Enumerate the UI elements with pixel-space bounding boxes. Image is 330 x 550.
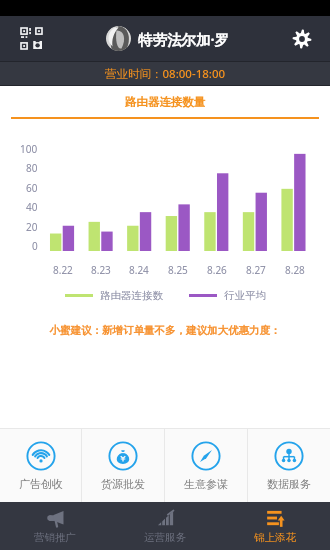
button[interactable]: 数据服务 — [248, 429, 330, 502]
staticText: 8.28 — [285, 263, 305, 277]
button[interactable]: 扫一扫 — [0, 16, 62, 61]
staticText: 20 — [26, 220, 38, 234]
staticText: 100 — [20, 142, 38, 156]
button[interactable]: 生意参谋 — [165, 429, 247, 502]
staticText: 8.24 — [129, 263, 149, 277]
staticText: 0 — [32, 239, 38, 253]
button[interactable]: 设置 — [274, 16, 330, 61]
staticText: 小蜜建议：新增订单量不多，建议加大优惠力度： — [0, 324, 330, 337]
staticText: 8.23 — [91, 263, 111, 277]
button[interactable]: 运营服务 — [110, 502, 220, 550]
staticText: 特劳法尔加·罗 — [138, 29, 230, 49]
staticText: 锦上添花 — [254, 531, 296, 544]
button[interactable]: 营业时间：08:00-18:00 — [0, 61, 330, 86]
staticText: 8.27 — [246, 263, 266, 277]
staticText: 营销推广 — [34, 531, 76, 544]
staticText: 8.22 — [53, 263, 73, 277]
staticText: 数据服务 — [267, 477, 311, 491]
button[interactable]: 营销推广 — [0, 502, 110, 550]
staticText: 80 — [26, 161, 38, 175]
staticText: 生意参谋 — [184, 477, 228, 491]
staticText: 运营服务 — [144, 531, 186, 544]
staticText: 60 — [26, 181, 38, 195]
staticText: 广告创收 — [19, 477, 63, 491]
button[interactable]: 锦上添花 — [220, 502, 330, 550]
staticText: 营业时间：08:00-18:00 — [105, 66, 226, 82]
staticText: 行业平均 — [224, 289, 266, 302]
button[interactable]: 特劳法尔加·罗 — [62, 16, 274, 61]
staticText: 8.25 — [168, 263, 188, 277]
button[interactable]: 货源批发 — [82, 429, 164, 502]
button[interactable]: 广告创收 — [0, 429, 81, 502]
staticText: 货源批发 — [101, 477, 145, 491]
staticText: 路由器连接数 — [100, 289, 163, 302]
staticText: 8.26 — [207, 263, 227, 277]
staticText: 路由器连接数量 — [0, 95, 330, 109]
staticText: 40 — [26, 200, 38, 214]
